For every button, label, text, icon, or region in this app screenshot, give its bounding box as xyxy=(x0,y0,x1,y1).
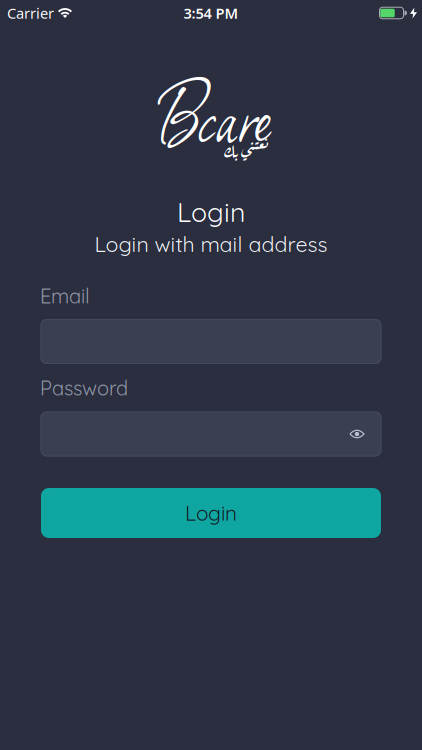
button[interactable]: Show password xyxy=(342,419,372,449)
staticText: 3:54 PM xyxy=(183,3,238,23)
staticText: Login with mail address xyxy=(94,231,327,257)
staticText: Bcare xyxy=(150,60,272,165)
staticText: Carrier xyxy=(7,3,54,23)
button[interactable]: Login xyxy=(41,488,381,538)
staticText: Login xyxy=(177,195,245,229)
staticText: Password xyxy=(40,375,128,400)
staticText: Login xyxy=(185,500,237,526)
staticText: Email xyxy=(40,283,90,308)
staticText: نعتني بك xyxy=(223,136,268,162)
